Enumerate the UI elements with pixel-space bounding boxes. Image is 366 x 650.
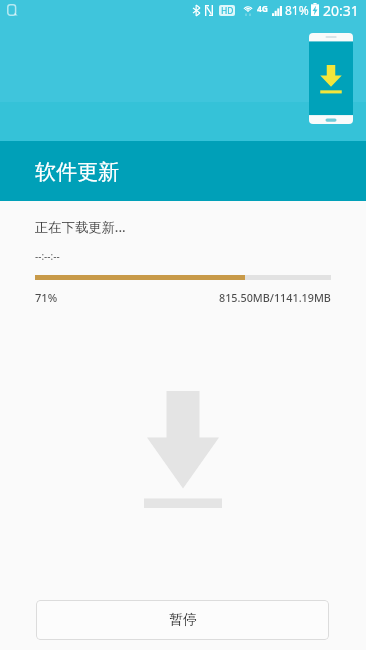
staticText: 4G [257, 3, 269, 15]
staticText: 81% [285, 2, 309, 18]
staticText: 815.50MB/1141.19MB [219, 290, 331, 305]
staticText: 暂停 [169, 611, 197, 629]
staticText: 正在下载更新... [35, 218, 126, 236]
other: NFC [205, 5, 213, 16]
staticText: 软件更新 [35, 159, 119, 185]
staticText: 20:31 [323, 1, 359, 20]
staticText: HD [221, 5, 234, 16]
button[interactable]: 暂停 [36, 600, 329, 640]
other: Screen capture [7, 4, 18, 17]
staticText: 71% [35, 290, 58, 305]
staticText: --:--:-- [35, 249, 60, 263]
